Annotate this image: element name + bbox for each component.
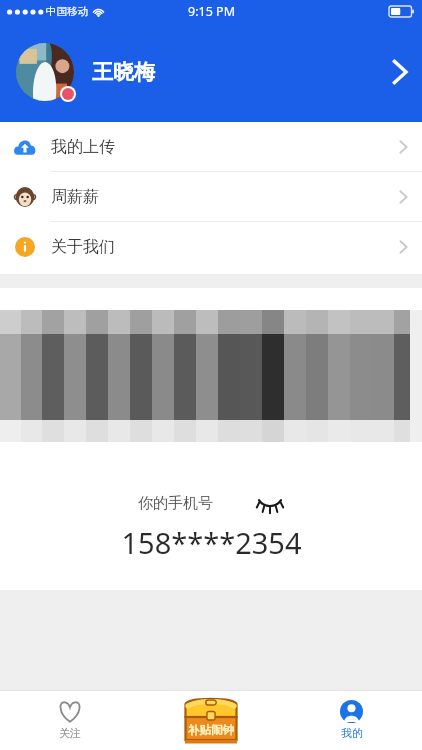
staticText: 158****2354 (121, 523, 302, 562)
staticText: 关注 (59, 726, 81, 740)
button[interactable]: Show phone number (255, 492, 285, 514)
button[interactable]: 周薪薪 (0, 172, 422, 221)
staticText: 我的 (341, 726, 363, 740)
staticText: 中国移动 (46, 5, 88, 18)
staticText: 我的上传 (51, 137, 115, 157)
staticText: 补贴闹钟 (188, 723, 234, 737)
staticText: 周薪薪 (51, 187, 99, 207)
staticText: 关于我们 (51, 237, 115, 257)
button[interactable]: 关注 (0, 690, 140, 750)
button[interactable]: 我的上传 (0, 122, 422, 171)
button[interactable]: 我的 (281, 690, 422, 750)
button[interactable]: 补贴闹钟 (140, 690, 281, 750)
staticText: 9:15 PM (188, 3, 235, 20)
staticText: 你的手机号 (138, 494, 213, 513)
button[interactable]: 王晓梅 (0, 22, 422, 122)
staticText: 王晓梅 (92, 59, 155, 85)
button[interactable]: 关于我们 (0, 222, 422, 271)
